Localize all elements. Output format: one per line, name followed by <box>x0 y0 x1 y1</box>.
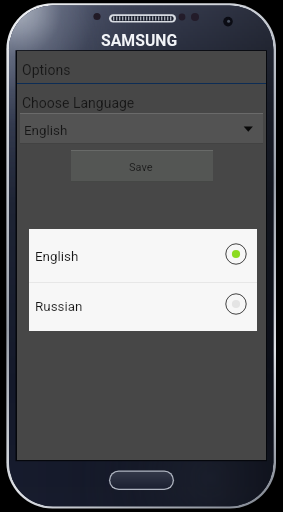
staticText: Options <box>22 62 71 78</box>
button[interactable] <box>71 150 213 182</box>
staticText: English <box>24 123 68 139</box>
button[interactable]: Selected <box>222 240 250 268</box>
button[interactable] <box>29 283 257 331</box>
button[interactable] <box>17 51 266 460</box>
staticText: English <box>35 249 79 265</box>
staticText: Choose Language <box>22 95 135 111</box>
staticText: SAMSUNG <box>101 31 178 50</box>
staticText: Russian <box>35 299 83 315</box>
button[interactable]: Home <box>109 470 174 490</box>
button[interactable] <box>20 113 263 144</box>
button[interactable] <box>29 229 257 331</box>
button[interactable]: Select <box>222 290 250 318</box>
staticText: Save <box>129 161 153 174</box>
